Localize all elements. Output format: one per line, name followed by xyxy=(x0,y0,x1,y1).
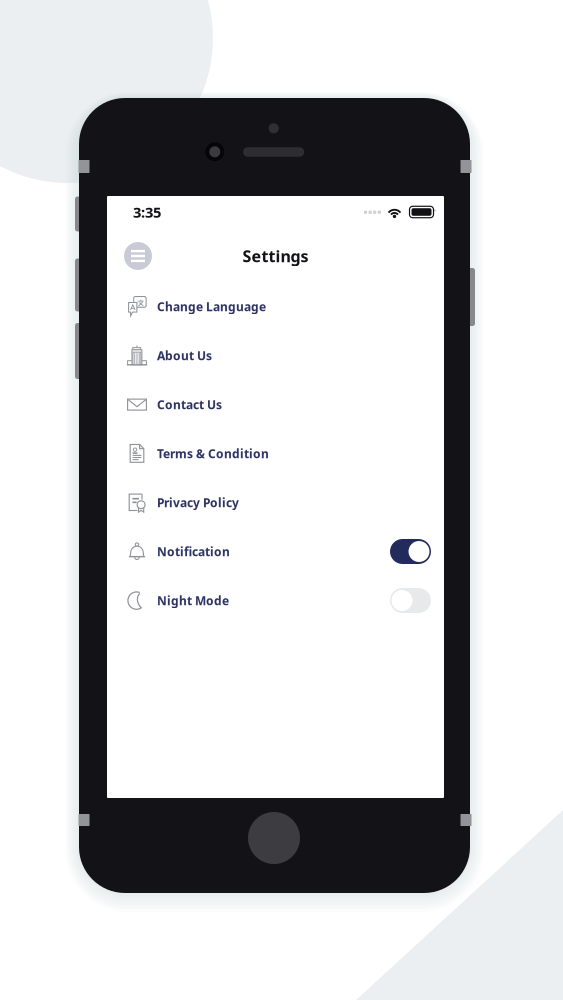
staticText: Terms & Condition xyxy=(157,445,269,461)
button[interactable]: Night Mode xyxy=(107,576,444,625)
staticText: Settings xyxy=(242,245,308,267)
staticText: Privacy Policy xyxy=(157,494,239,510)
staticText: Night Mode xyxy=(157,592,229,608)
button[interactable]: Change Language xyxy=(107,282,444,331)
button[interactable]: Contact Us xyxy=(107,380,444,429)
button[interactable]: Terms & Condition xyxy=(107,429,444,478)
button[interactable]: Menu xyxy=(122,240,154,272)
button[interactable]: Notification xyxy=(107,527,444,576)
staticText: Change Language xyxy=(157,298,266,314)
staticText: Notification xyxy=(157,543,230,559)
staticText: Contact Us xyxy=(157,396,222,412)
button[interactable]: About Us xyxy=(107,331,444,380)
staticText: 3:35 xyxy=(133,202,161,222)
button[interactable]: Privacy Policy xyxy=(107,478,444,527)
staticText: About Us xyxy=(157,347,212,363)
